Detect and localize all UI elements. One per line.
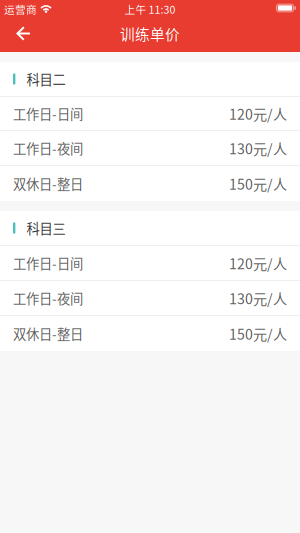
button[interactable]: Back <box>0 18 38 53</box>
staticText: 科目三 <box>26 218 65 238</box>
staticText: 150元/人 <box>229 323 287 344</box>
button[interactable]: 工作日-夜间 <box>0 281 300 316</box>
staticText: 150元/人 <box>229 173 287 194</box>
staticText: 130元/人 <box>229 138 287 158</box>
staticText: 双休日-整日 <box>13 174 83 193</box>
button[interactable]: 工作日-日间 <box>0 97 300 131</box>
staticText: 120元/人 <box>229 103 287 124</box>
staticText: 工作日-日间 <box>13 104 83 123</box>
staticText: 130元/人 <box>229 288 287 308</box>
staticText: 工作日-日间 <box>13 253 83 273</box>
staticText: 工作日-夜间 <box>13 138 83 158</box>
staticText: 120元/人 <box>229 253 287 273</box>
button[interactable]: 双休日-整日 <box>0 316 300 351</box>
staticText: 双休日-整日 <box>13 324 83 343</box>
staticText: 上午 11:30 <box>124 1 175 17</box>
staticText: 工作日-夜间 <box>13 288 83 308</box>
button[interactable]: 双休日-整日 <box>0 166 300 201</box>
button[interactable]: 工作日-日间 <box>0 246 300 281</box>
staticText: 训练单价 <box>120 23 180 44</box>
staticText: 运营商 <box>4 1 37 17</box>
staticText: 科目二 <box>26 69 65 89</box>
button[interactable]: 工作日-夜间 <box>0 131 300 166</box>
